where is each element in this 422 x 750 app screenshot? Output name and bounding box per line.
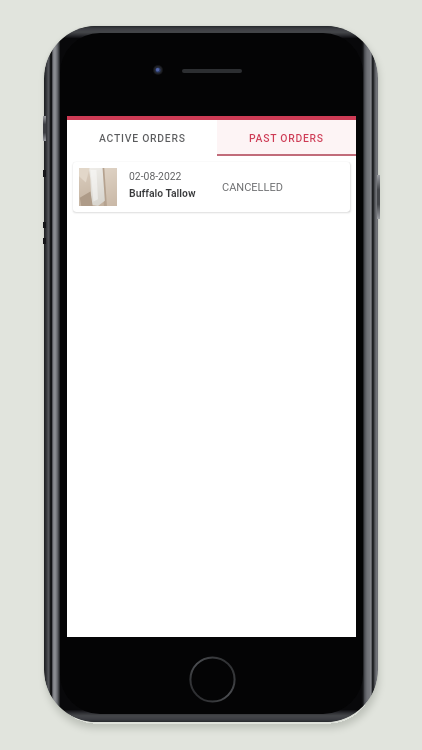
- staticText: Buffalo Tallow: [129, 187, 196, 199]
- button[interactable]: ACTIVE ORDERS: [67, 120, 217, 156]
- other: Buffalo Tallow product photo: [79, 168, 117, 206]
- staticText: PAST ORDERS: [249, 132, 324, 144]
- button[interactable]: PAST ORDERS: [217, 120, 356, 156]
- button[interactable]: Buffalo Tallow product photo: [73, 162, 350, 212]
- staticText: ACTIVE ORDERS: [99, 132, 186, 144]
- staticText: CANCELLED: [222, 181, 283, 194]
- staticText: 02-08-2022: [129, 170, 182, 182]
